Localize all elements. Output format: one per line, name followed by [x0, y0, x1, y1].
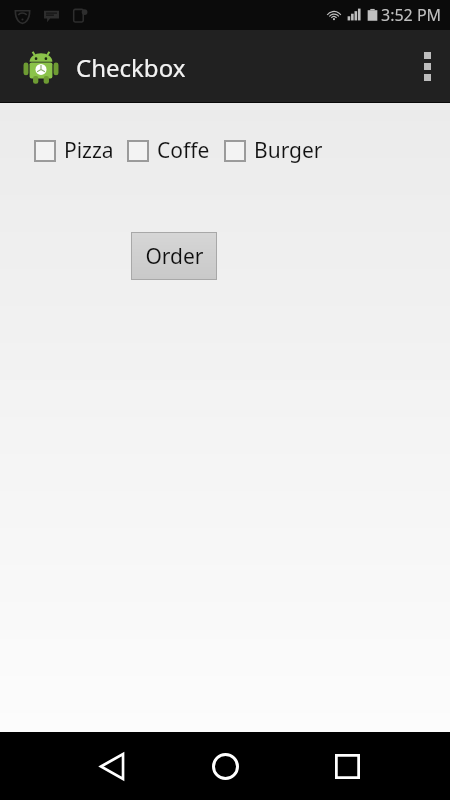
button[interactable]: Recent apps: [317, 736, 377, 796]
button[interactable]: Home: [195, 736, 255, 796]
button[interactable]: More options: [404, 30, 450, 103]
staticText: Pizza: [64, 136, 114, 165]
staticText: Burger: [254, 136, 323, 165]
staticText: Order: [145, 242, 204, 271]
button[interactable]: Burger: [224, 136, 323, 165]
staticText: Coffe: [157, 136, 210, 165]
button[interactable]: Pizza: [34, 136, 114, 165]
staticText: Checkbox: [76, 51, 186, 84]
button[interactable]: Order: [132, 233, 216, 279]
button[interactable]: Back: [82, 736, 142, 796]
button[interactable]: Coffe: [127, 136, 210, 165]
staticText: 3:52 PM: [381, 4, 442, 26]
